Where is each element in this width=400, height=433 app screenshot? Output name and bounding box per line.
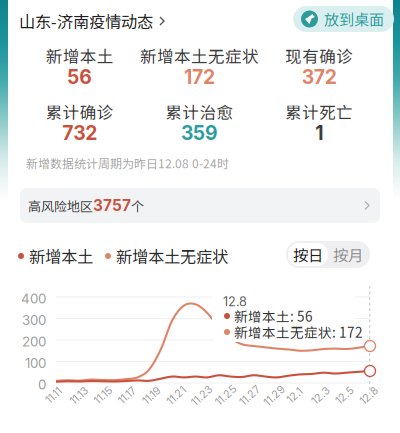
staticText: 1 bbox=[315, 121, 323, 145]
staticText: 新增本土无症状: 172 bbox=[234, 322, 363, 342]
staticText: 高风险地区 bbox=[28, 196, 93, 215]
staticText: 累计治愈 bbox=[165, 99, 233, 123]
staticText: 12.1 bbox=[286, 389, 303, 402]
staticText: 新增本土 bbox=[46, 43, 114, 67]
staticText: 359 bbox=[181, 121, 218, 145]
staticText: 12.8 bbox=[223, 294, 247, 309]
staticText: 11.27 bbox=[238, 389, 262, 402]
staticText: 累计死亡 bbox=[285, 99, 353, 123]
staticText: 11.25 bbox=[214, 389, 238, 402]
staticText: 山东-济南疫情动态 bbox=[19, 9, 153, 33]
staticText: 372 bbox=[302, 65, 337, 89]
staticText: 11.15 bbox=[93, 389, 113, 402]
button[interactable]: 放到桌面 bbox=[293, 6, 394, 32]
button[interactable]: 山东-济南疫情动态 bbox=[19, 9, 165, 33]
staticText: 100 bbox=[25, 355, 46, 371]
staticText: 12.8 bbox=[358, 389, 379, 402]
staticText: 按月 bbox=[333, 243, 363, 266]
staticText: 11.11 bbox=[44, 389, 62, 402]
staticText: 新增本土: 56 bbox=[234, 306, 313, 326]
staticText: 放到桌面 bbox=[324, 8, 384, 30]
staticText: 200 bbox=[22, 334, 46, 350]
staticText: 新增数据统计周期为昨日12.08 0-24时 bbox=[26, 154, 229, 172]
staticText: 0 bbox=[38, 377, 46, 393]
staticText: 新增本土无症状 bbox=[116, 244, 228, 268]
staticText: 11.23 bbox=[189, 389, 214, 402]
staticText: 400 bbox=[21, 291, 46, 307]
staticText: 12.3 bbox=[310, 389, 331, 402]
staticText: 300 bbox=[22, 312, 46, 328]
staticText: 现有确诊 bbox=[285, 43, 353, 67]
staticText: 新增本土 bbox=[29, 244, 93, 268]
staticText: 11.19 bbox=[141, 389, 162, 402]
staticText: 按日 bbox=[293, 243, 323, 266]
staticText: 新增本土无症状 bbox=[140, 43, 259, 67]
staticText: 11.29 bbox=[262, 389, 287, 402]
staticText: 56 bbox=[67, 65, 92, 89]
staticText: 172 bbox=[184, 65, 215, 89]
staticText: 累计确诊 bbox=[46, 99, 114, 123]
button[interactable]: 高风险地区 bbox=[20, 188, 380, 223]
staticText: 11.17 bbox=[117, 389, 137, 402]
staticText: 3757 bbox=[93, 196, 131, 215]
button[interactable]: 按月 bbox=[328, 243, 368, 266]
button[interactable]: 按日 bbox=[288, 243, 328, 266]
staticText: 11.21 bbox=[165, 389, 187, 402]
staticText: 732 bbox=[62, 121, 97, 145]
staticText: 个 bbox=[131, 196, 144, 215]
staticText: 11.13 bbox=[69, 389, 90, 402]
staticText: 12.5 bbox=[334, 389, 354, 402]
